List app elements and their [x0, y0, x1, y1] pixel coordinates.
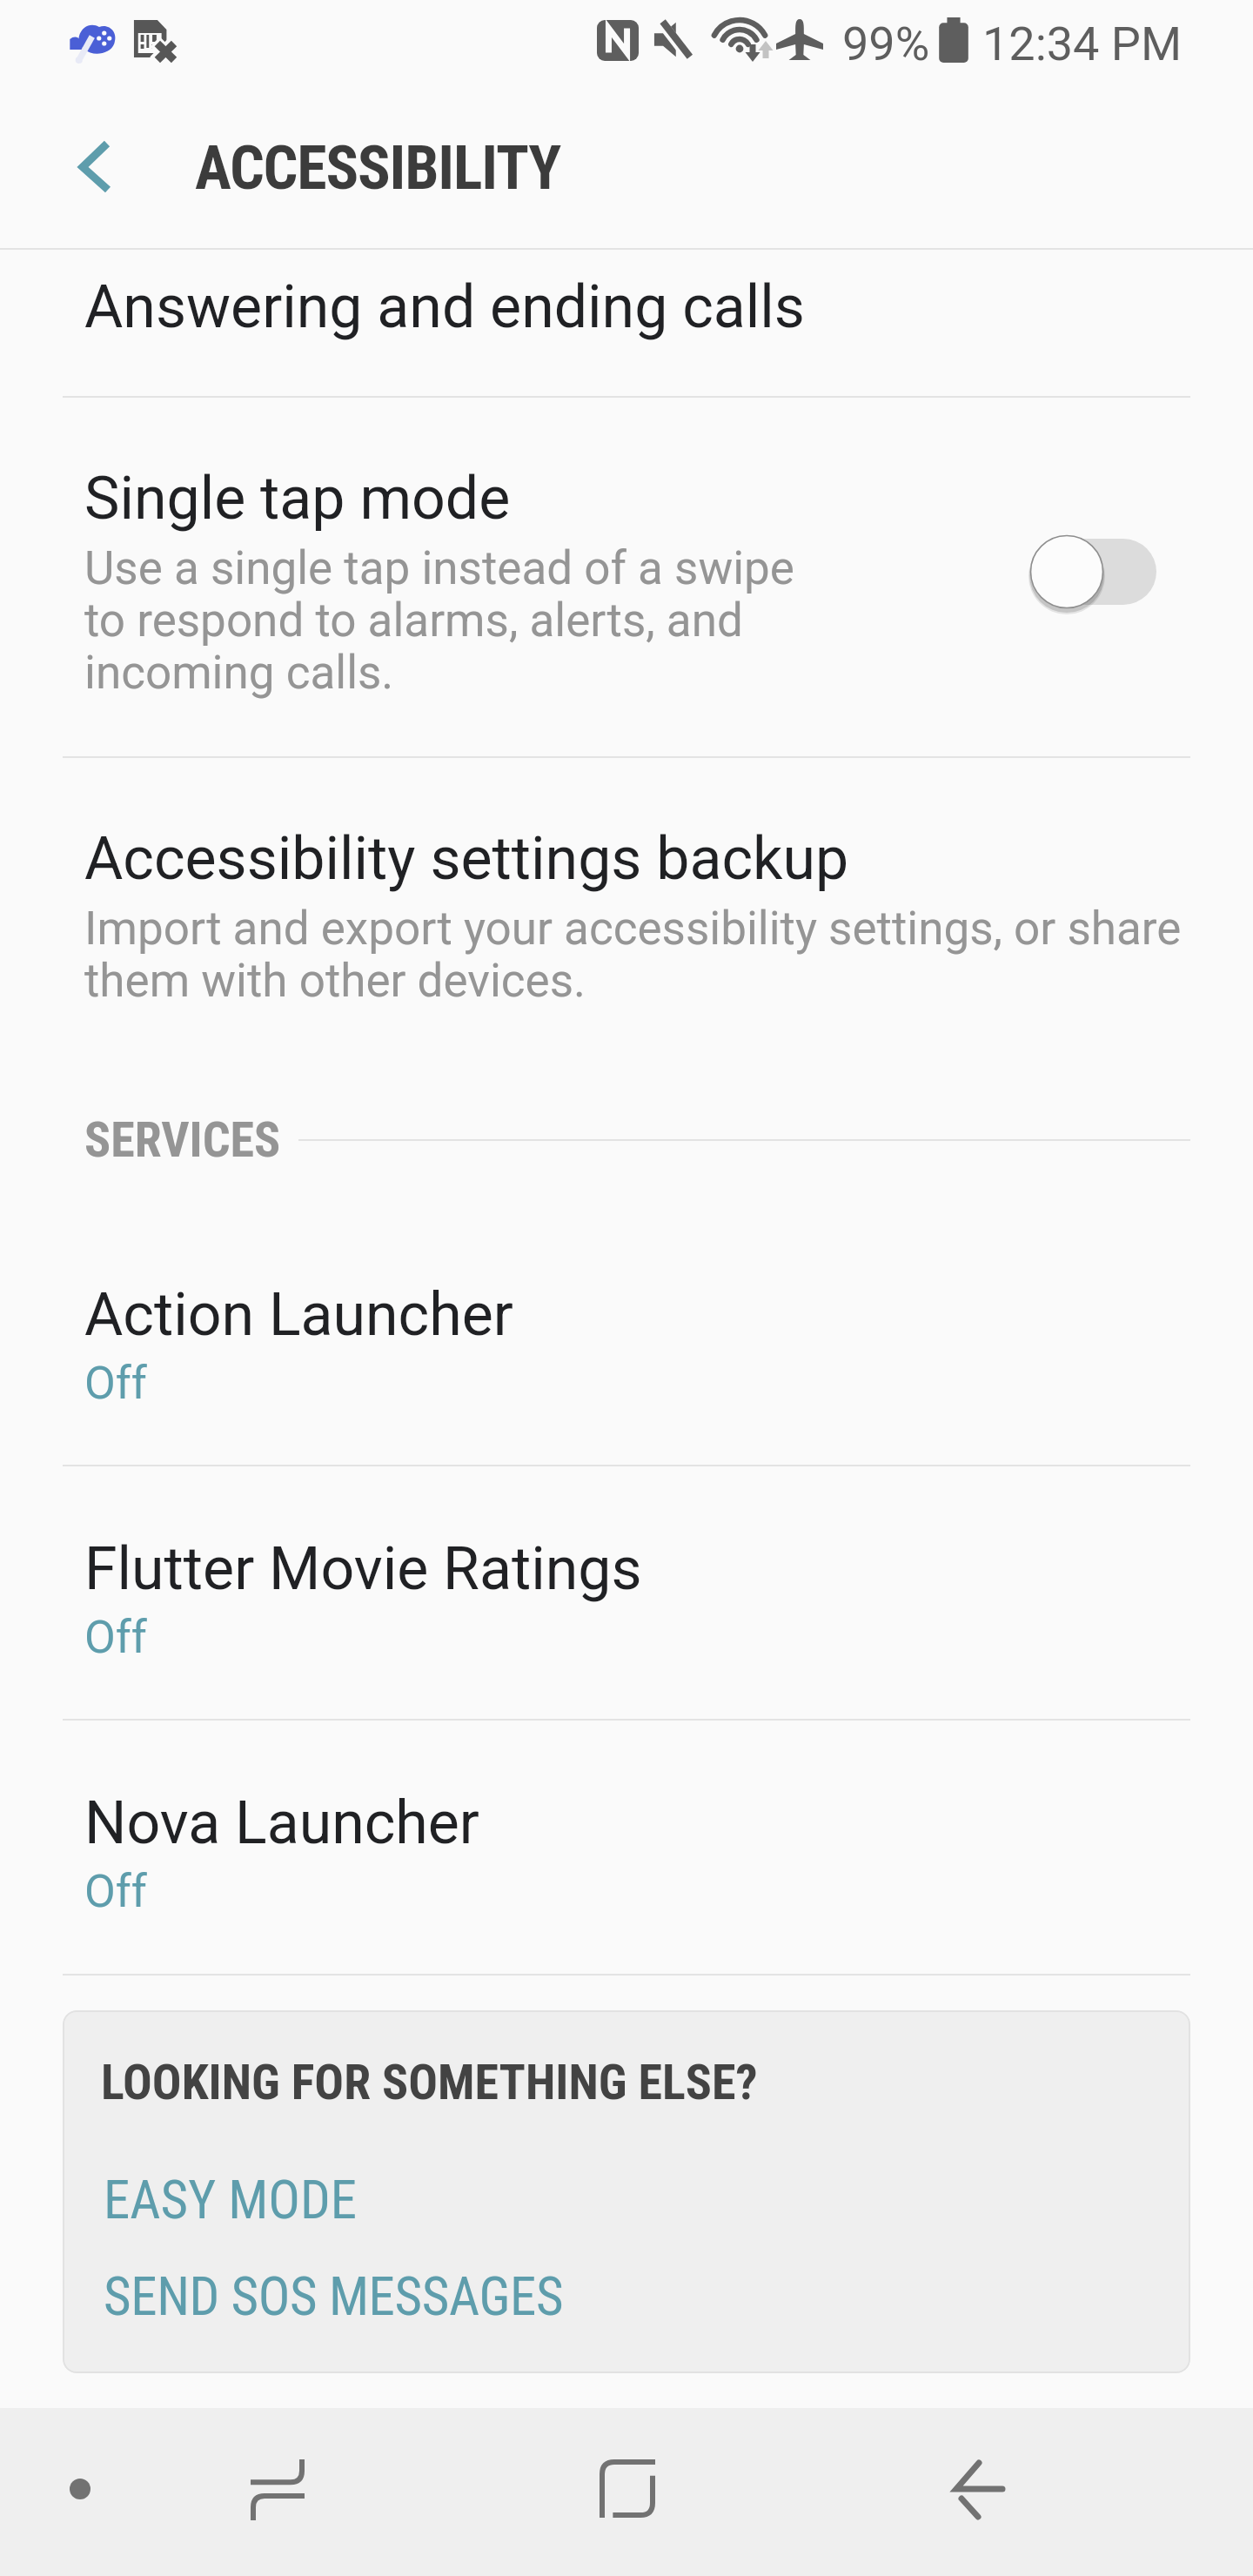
button[interactable]: Single tap mode	[0, 397, 1253, 756]
staticText: Action Launcher	[84, 1280, 513, 1350]
staticText: Single tap mode	[84, 464, 511, 533]
button[interactable]: Back	[945, 2450, 1015, 2523]
staticText: 12:34 PM	[982, 17, 1183, 71]
staticText: Nova Launcher	[84, 1788, 479, 1858]
staticText: 99%	[842, 17, 930, 71]
staticText: Accessibility settings backup	[84, 824, 849, 894]
button[interactable]: Flutter Movie Ratings	[0, 1465, 1253, 1719]
button[interactable]: Navigate up	[52, 111, 150, 209]
button[interactable]: Hide keyboard	[45, 2454, 115, 2524]
button[interactable]: Answering and ending calls	[0, 249, 1253, 396]
button[interactable]: Recent apps	[251, 2459, 305, 2520]
button[interactable]: Single tap mode	[1029, 534, 1160, 613]
staticText: Flutter Movie Ratings	[84, 1534, 642, 1604]
button[interactable]: Action Launcher	[0, 1211, 1253, 1465]
staticText: Off	[84, 1357, 147, 1410]
staticText: EASY MODE	[104, 2169, 358, 2231]
button[interactable]: EASY MODE	[94, 2157, 390, 2237]
button[interactable]: SEND SOS MESSAGES	[94, 2254, 599, 2334]
staticText: Off	[84, 1611, 147, 1664]
button[interactable]: Home	[600, 2459, 655, 2518]
staticText: Answering and ending calls	[84, 272, 805, 342]
staticText: SEND SOS MESSAGES	[104, 2265, 564, 2327]
staticText: Off	[84, 1865, 147, 1918]
staticText: ACCESSIBILITY	[195, 132, 561, 204]
staticText: LOOKING FOR SOMETHING ELSE?	[101, 2054, 758, 2111]
button[interactable]: Nova Launcher	[0, 1719, 1253, 1973]
staticText: Import and export your accessibility set…	[84, 902, 1182, 1008]
staticText: Use a single tap instead of a swipe to r…	[84, 541, 794, 700]
staticText: SERVICES	[84, 1111, 281, 1169]
button[interactable]: Accessibility settings backup	[0, 757, 1253, 1053]
